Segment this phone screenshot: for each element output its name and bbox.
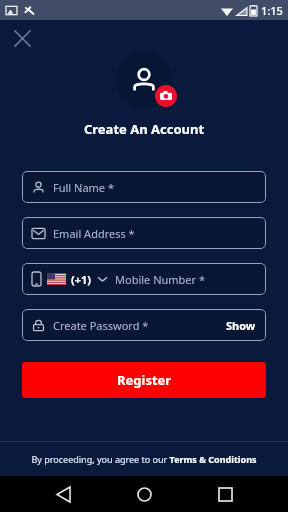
button[interactable]: Register <box>22 362 266 398</box>
button[interactable]: By proceeding, you agree to our Terms & … <box>0 442 288 476</box>
button[interactable]: Show <box>226 318 256 333</box>
staticText: (+1) <box>71 272 92 287</box>
staticText: Show <box>226 318 256 333</box>
button[interactable]: Recent apps <box>207 476 243 512</box>
staticText: Create Password * <box>53 318 149 333</box>
staticText: By proceeding, you agree to our Terms & … <box>31 453 257 465</box>
staticText: Create An Account <box>0 120 288 138</box>
staticText: Mobile Number * <box>115 272 206 287</box>
staticText: Register <box>117 371 172 389</box>
staticText: Email Address * <box>53 226 135 241</box>
button[interactable]: Full Name * <box>22 171 266 203</box>
button[interactable]: Back <box>45 476 81 512</box>
button[interactable]: Add profile photo <box>116 52 172 108</box>
button[interactable]: Home <box>126 476 162 512</box>
button[interactable]: Email Address * <box>22 217 266 249</box>
button[interactable]: Create Password * <box>22 309 266 341</box>
button[interactable]: (+1) <box>22 263 266 295</box>
staticText: Full Name * <box>53 180 114 195</box>
staticText: 1:15 <box>261 3 283 18</box>
button[interactable]: Close <box>8 24 36 52</box>
